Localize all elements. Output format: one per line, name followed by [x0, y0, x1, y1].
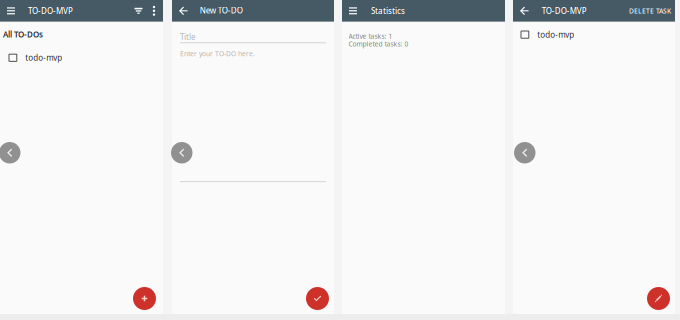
button[interactable]: Back: [513, 1, 529, 21]
staticText: Active tasks: 1: [348, 32, 392, 40]
button[interactable]: todo-mvp: [0, 40, 163, 66]
staticText: todo-mvp: [25, 52, 62, 63]
button[interactable]: Back: [172, 1, 188, 21]
button[interactable]: Menu: [0, 2, 15, 20]
button[interactable]: Previous screenshot: [171, 142, 192, 163]
button[interactable]: Previous screenshot: [514, 142, 535, 163]
staticText: TO-DO-MVP: [542, 5, 587, 16]
staticText: Enter your TO-DO here.: [180, 49, 255, 58]
staticText: All TO-DOs: [3, 29, 43, 40]
staticText: TO-DO-MVP: [28, 5, 73, 16]
button[interactable]: Edit task: [647, 287, 670, 310]
button[interactable]: More options: [149, 2, 163, 20]
button[interactable]: Add task: [133, 287, 156, 310]
staticText: DELETE TASK: [629, 6, 671, 15]
staticText: Completed tasks: 0: [348, 39, 408, 48]
button[interactable]: Previous screenshot: [0, 142, 20, 163]
button[interactable]: Filter tasks: [128, 2, 149, 20]
staticText: Title: [180, 32, 196, 42]
button[interactable]: Menu: [342, 2, 357, 20]
button[interactable]: todo-mvp: [513, 22, 675, 43]
staticText: New TO-DO: [200, 5, 243, 16]
button[interactable]: Save task: [306, 287, 329, 310]
button[interactable]: DELETE TASK: [629, 0, 675, 21]
staticText: todo-mvp: [537, 29, 574, 40]
staticText: Statistics: [371, 5, 405, 16]
